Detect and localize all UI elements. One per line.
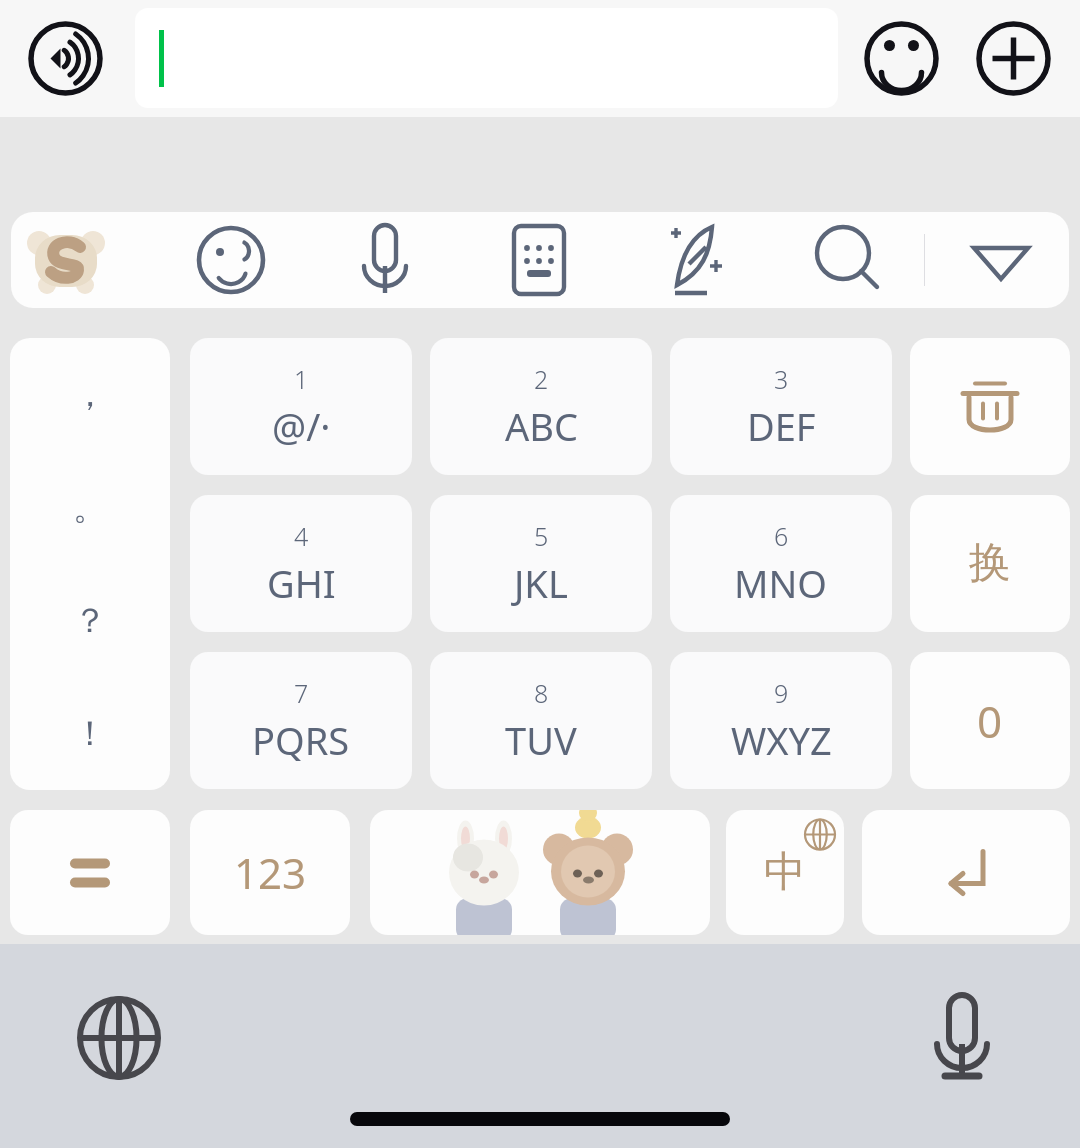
button[interactable]: 8 xyxy=(430,652,652,789)
staticText: 换 xyxy=(969,537,1011,590)
button[interactable]: Voice input xyxy=(337,212,433,308)
button[interactable]: Emoji xyxy=(863,20,940,97)
staticText: 2 xyxy=(534,362,549,396)
button[interactable]: Change xyxy=(910,495,1070,632)
button[interactable]: AI writing xyxy=(646,212,742,308)
button[interactable]: Space xyxy=(370,810,710,935)
button[interactable]: Stickers xyxy=(183,212,279,308)
staticText: 3 xyxy=(774,362,789,396)
staticText: @/· xyxy=(272,400,331,452)
button[interactable]: 7 xyxy=(190,652,412,789)
button[interactable]: Keyboard layout xyxy=(491,212,587,308)
staticText: ， xyxy=(73,373,107,416)
button[interactable]: Voice input xyxy=(915,991,1009,1085)
staticText: WXYZ xyxy=(731,714,832,766)
button[interactable]: 1 xyxy=(190,338,412,475)
button[interactable]: 5 xyxy=(430,495,652,632)
staticText: 5 xyxy=(534,519,549,553)
button[interactable]: 6 xyxy=(670,495,892,632)
staticText: 8 xyxy=(534,676,549,710)
button[interactable] xyxy=(135,8,838,108)
button[interactable]: More options xyxy=(975,20,1052,97)
staticText: DEF xyxy=(747,400,816,452)
button[interactable]: 2 xyxy=(430,338,652,475)
staticText: 4 xyxy=(294,519,309,553)
button[interactable]: Enter xyxy=(862,810,1070,935)
button[interactable]: Numbers xyxy=(190,810,350,935)
button[interactable]: Sogou input xyxy=(18,212,114,308)
staticText: GHI xyxy=(267,557,336,609)
staticText: 6 xyxy=(774,519,789,553)
staticText: TUV xyxy=(505,714,577,766)
button[interactable]: Search xyxy=(800,212,896,308)
button[interactable]: ， xyxy=(10,338,170,790)
staticText: 9 xyxy=(774,676,789,710)
button[interactable]: 9 xyxy=(670,652,892,789)
staticText: ！ xyxy=(73,712,107,755)
staticText: 123 xyxy=(234,844,307,901)
button[interactable]: Symbols xyxy=(10,810,170,935)
button[interactable]: Delete xyxy=(910,338,1070,475)
button[interactable]: Hide keyboard xyxy=(953,212,1049,308)
button[interactable]: Zero xyxy=(910,652,1070,789)
staticText: 中 xyxy=(764,846,806,899)
staticText: 1 xyxy=(294,362,309,396)
staticText: 。 xyxy=(73,486,107,529)
staticText: JKL xyxy=(514,557,568,609)
button[interactable]: 4 xyxy=(190,495,412,632)
button[interactable]: Switch language xyxy=(72,991,166,1085)
staticText: ABC xyxy=(505,400,578,452)
staticText: ？ xyxy=(73,599,107,642)
button[interactable]: Voice message xyxy=(27,20,104,97)
button[interactable]: 3 xyxy=(670,338,892,475)
button[interactable]: Chinese input, language xyxy=(726,810,844,935)
staticText: PQRS xyxy=(252,714,350,766)
staticText: 0 xyxy=(977,691,1003,751)
staticText: MNO xyxy=(734,557,828,609)
staticText: 7 xyxy=(294,676,309,710)
